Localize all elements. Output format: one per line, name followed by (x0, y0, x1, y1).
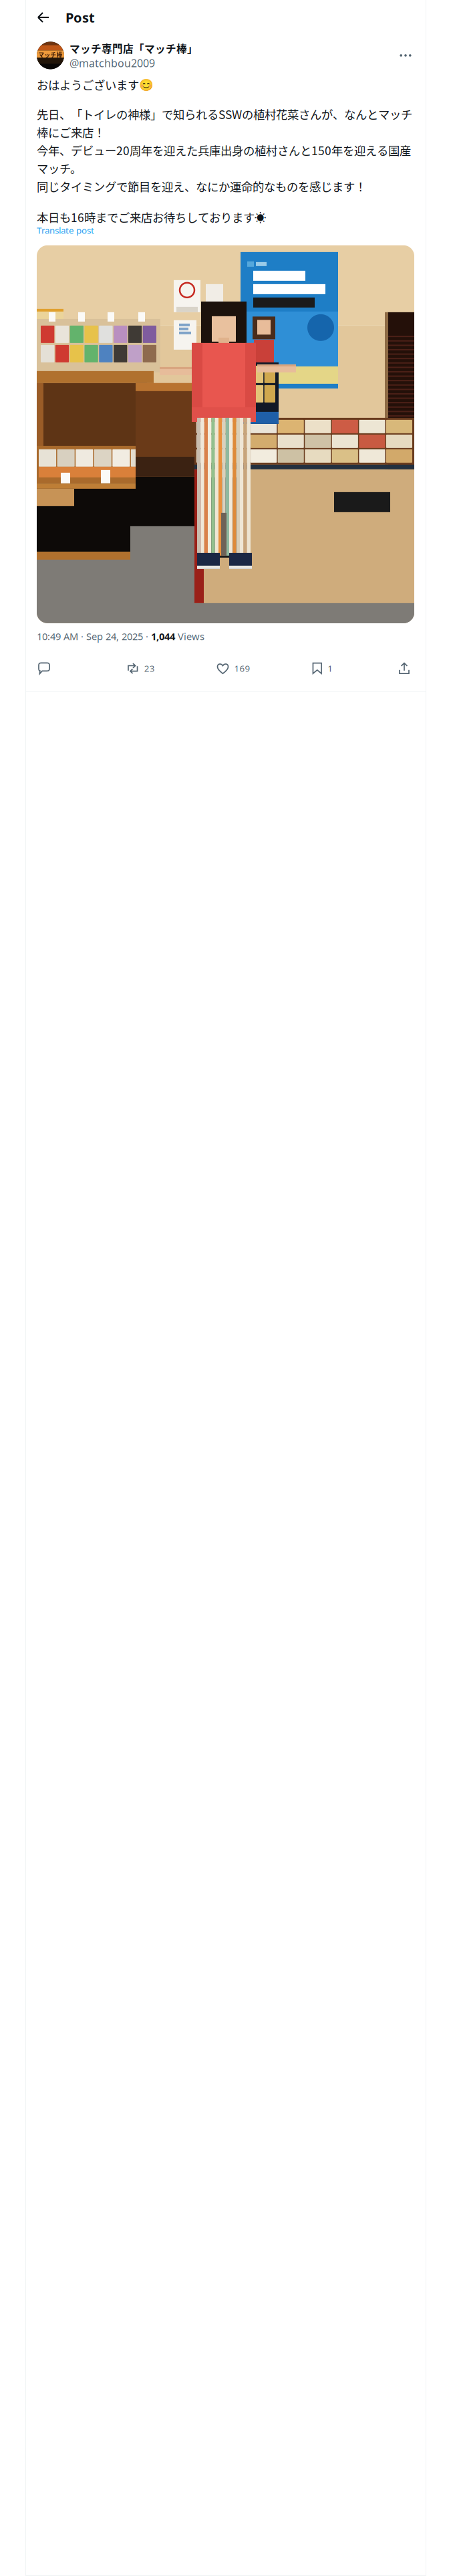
button[interactable]: Share (395, 658, 414, 678)
button[interactable]: 169 (217, 658, 250, 678)
staticText: Post (65, 8, 95, 26)
staticText: 169 (234, 662, 250, 674)
button[interactable]: More (398, 48, 414, 63)
staticText: 1,044 (151, 630, 175, 643)
button[interactable]: 1 (312, 658, 333, 678)
staticText: 今年、デビュー20周年を迎えた兵庫出身の植村さんと150年を迎える国産 (37, 142, 411, 158)
staticText: Views (175, 630, 204, 643)
staticText: おはようございます😊 (37, 76, 154, 93)
staticText: 先日、「トイレの神様」で知られるSSWの植村花菜さんが、なんとマッチ (37, 106, 412, 122)
staticText: 23 (144, 662, 155, 674)
button[interactable]: 23 (127, 658, 155, 678)
staticText: 10:49 AM · Sep 24, 2025 · (37, 630, 151, 643)
staticText: 本日も16時までご来店お待ちしております☀ (37, 209, 266, 225)
staticText: Translate post (37, 224, 94, 236)
staticText: マッチ。 (37, 160, 82, 176)
button[interactable]: Back (33, 7, 53, 27)
staticText: 1 (328, 662, 333, 674)
staticText: 同じタイミングで節目を迎え、なにか運命的なものを感じます！ (37, 178, 366, 195)
staticText: 棒にご来店！ (37, 124, 105, 140)
button[interactable]: Translate post (26, 226, 105, 240)
staticText: マッチ棒 (38, 50, 62, 59)
button[interactable]: Reply (38, 658, 65, 678)
staticText: @matchbou2009 (69, 56, 155, 70)
staticText: マッチ専門店「マッチ棒」 (69, 41, 198, 56)
